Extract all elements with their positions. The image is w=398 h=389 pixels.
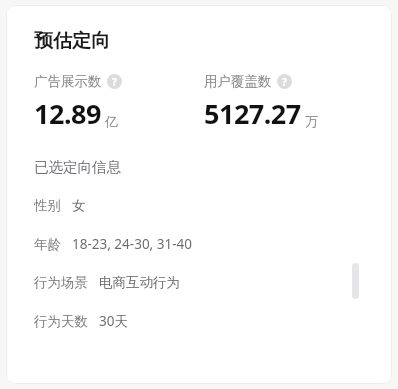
staticText: 万	[305, 113, 318, 129]
staticText: 30天	[99, 312, 128, 330]
staticText: 亿	[105, 113, 118, 129]
button[interactable]: 行为天数	[34, 312, 374, 330]
staticText: 已选定向信息	[34, 158, 121, 176]
staticText: 18-23, 24-30, 31-40	[72, 235, 192, 253]
staticText: 年龄	[34, 236, 61, 253]
staticText: 行为天数	[34, 313, 88, 330]
staticText: 电商互动行为	[99, 274, 180, 291]
button[interactable]: 广告展示数说明	[107, 74, 122, 89]
button[interactable]: 行为场景	[34, 274, 374, 291]
button[interactable]: 性别	[34, 197, 374, 214]
staticText: 5127.27	[204, 95, 301, 132]
staticText: 女	[72, 197, 86, 214]
button[interactable]: 用户覆盖数说明	[277, 74, 292, 89]
staticText: ?	[282, 75, 287, 89]
staticText: 性别	[34, 197, 61, 214]
staticText: 广告展示数	[34, 73, 102, 90]
staticText: 12.89	[34, 95, 101, 132]
staticText: 行为场景	[34, 274, 88, 291]
staticText: 用户覆盖数	[204, 73, 272, 90]
staticText: ?	[112, 75, 117, 89]
button[interactable]: 年龄	[34, 235, 374, 253]
staticText: 预估定向	[34, 29, 110, 53]
